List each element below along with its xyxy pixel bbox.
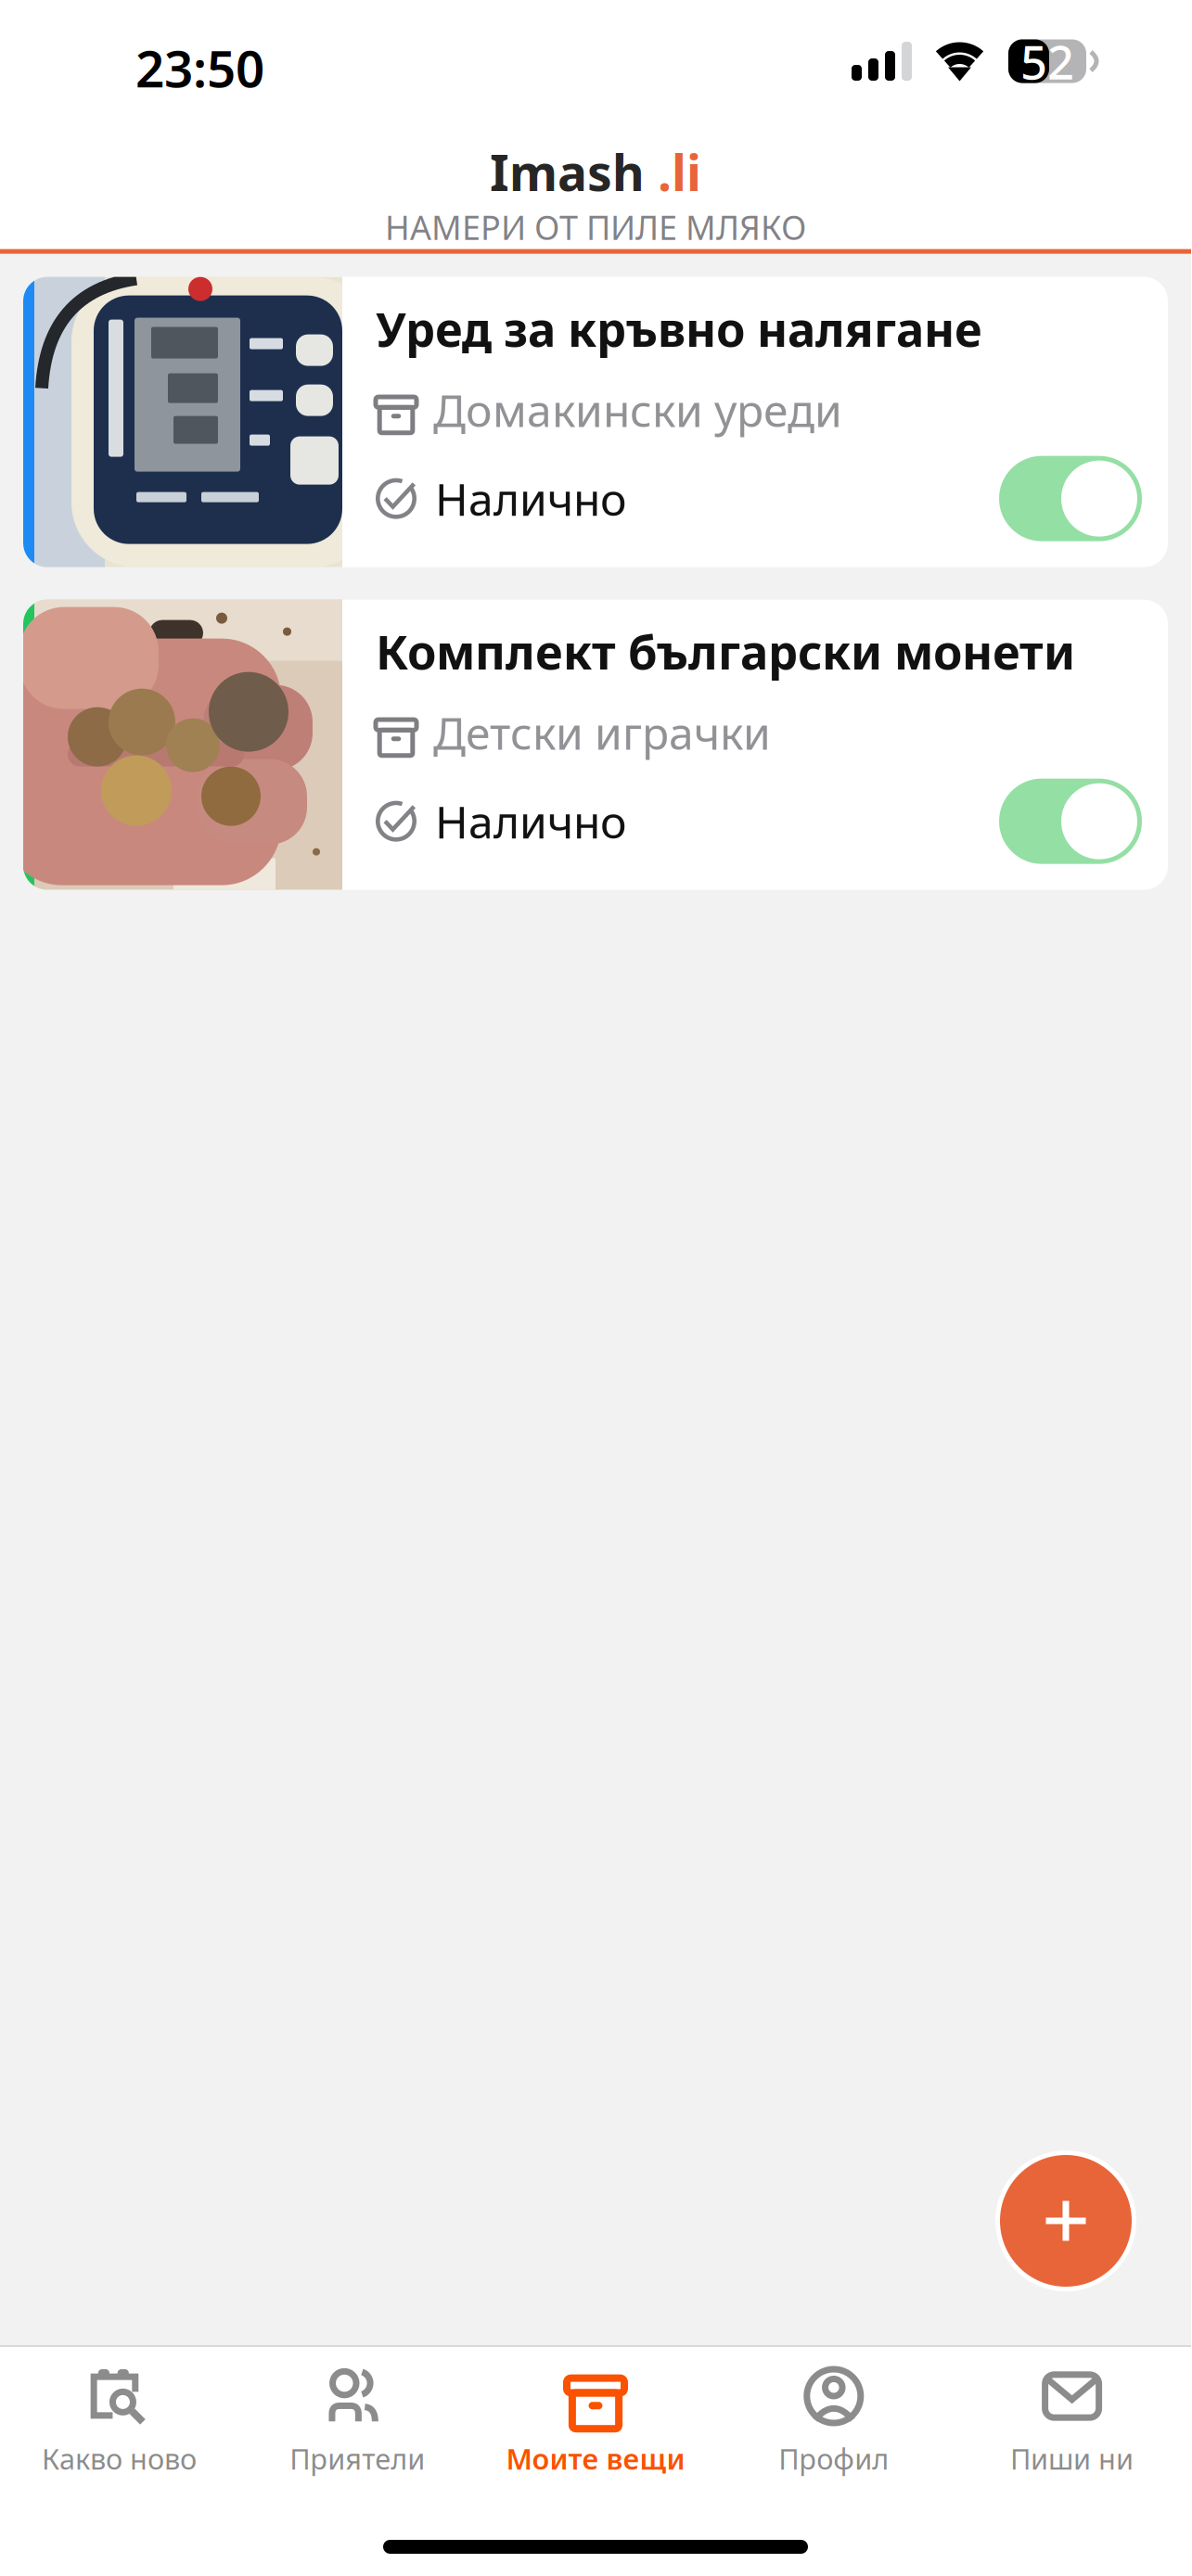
button[interactable]: Добави вещ <box>995 2150 1136 2291</box>
staticText: 23:50 <box>135 34 264 101</box>
button[interactable]: Какво ново <box>0 2347 238 2487</box>
staticText: Приятели <box>290 2440 425 2477</box>
staticText: 52 <box>1020 30 1074 92</box>
staticText: Профил <box>779 2440 889 2477</box>
button[interactable]: Моите вещи <box>476 2347 715 2487</box>
staticText: Домакински уреди <box>433 380 842 439</box>
staticText: Уред за кръвно налягане <box>376 297 982 360</box>
staticText: НАМЕРИ ОТ ПИЛЕ МЛЯКО <box>385 205 806 249</box>
staticText: Детски играчки <box>433 703 771 762</box>
button[interactable]: Приятели <box>238 2347 476 2487</box>
staticText: .li <box>645 139 701 205</box>
button[interactable]: Пиши ни <box>953 2347 1191 2487</box>
staticText: Моите вещи <box>506 2440 685 2477</box>
staticText: Imash <box>490 139 645 205</box>
staticText: Комплект български монети <box>376 620 1075 682</box>
staticText: Налично <box>435 792 627 851</box>
staticText: Пиши ни <box>1010 2440 1134 2477</box>
staticText: Налично <box>435 469 627 528</box>
button[interactable]: Уред за кръвно налягане <box>23 277 1168 567</box>
button[interactable]: Профил <box>715 2347 953 2487</box>
staticText: Какво ново <box>42 2440 197 2477</box>
button[interactable]: Комплект български монети <box>23 600 1168 890</box>
